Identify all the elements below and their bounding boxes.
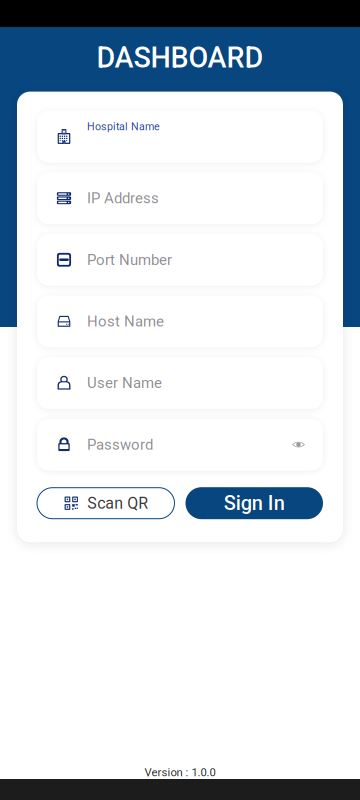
staticText: IP Address [87, 189, 159, 207]
staticText: Version : 1.0.0 [144, 766, 215, 779]
button[interactable]: Sign In [185, 487, 323, 519]
staticText: Hospital Name [87, 120, 160, 133]
button[interactable]: Scan QR [37, 488, 174, 519]
staticText: Port Number [87, 251, 172, 268]
staticText: Scan QR [87, 494, 148, 513]
button[interactable]: User Name [37, 357, 323, 409]
staticText: Sign In [224, 491, 285, 515]
button[interactable]: Password [37, 419, 323, 471]
button[interactable]: IP Address [37, 172, 323, 224]
staticText: DASHBOARD [96, 41, 263, 75]
button[interactable]: Host Name [37, 295, 323, 347]
staticText: Password [87, 436, 153, 453]
button[interactable]: Hospital Name [37, 111, 323, 163]
staticText: User Name [87, 374, 162, 392]
staticText: Host Name [87, 313, 164, 330]
button[interactable]: Port Number [37, 234, 323, 286]
